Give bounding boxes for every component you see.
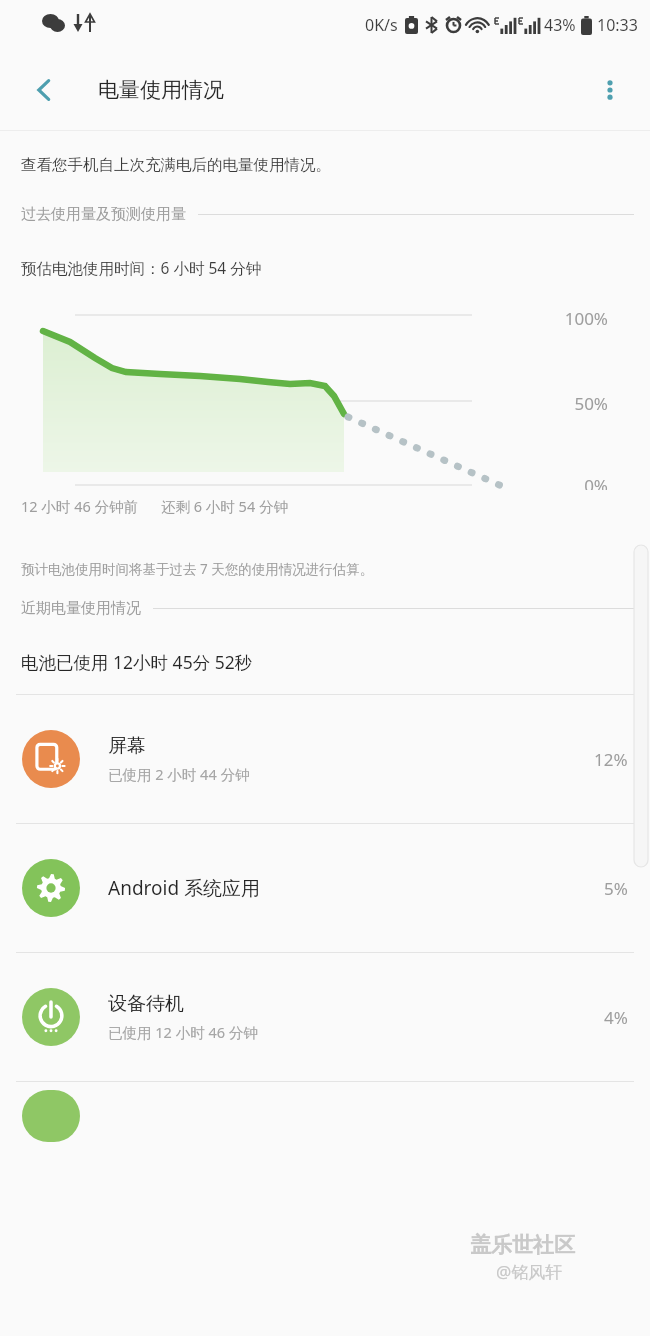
staticText: 已使用 12 小时 46 分钟 — [108, 1022, 258, 1042]
staticText: 预估电池使用时间：6 小时 54 分钟 — [21, 257, 262, 278]
button[interactable]: Back — [20, 66, 68, 114]
staticText: 电量使用情况 — [98, 77, 224, 103]
staticText: 50% — [574, 392, 608, 415]
staticText: 查看您手机自上次充满电后的电量使用情况。 — [21, 155, 331, 175]
staticText: 0K/s — [365, 14, 398, 36]
staticText: 设备待机 — [108, 992, 184, 1016]
staticText: 10:33 — [597, 14, 638, 36]
staticText: 5% — [604, 877, 628, 900]
staticText: 12% — [594, 748, 628, 771]
staticText: 屏幕 — [108, 734, 146, 758]
staticText: 近期电量使用情况 — [21, 599, 141, 618]
staticText: 预计电池使用时间将基于过去 7 天您的使用情况进行估算。 — [21, 560, 374, 578]
staticText: 100% — [564, 307, 608, 330]
staticText: 0% — [584, 474, 608, 490]
button[interactable]: 设备待机 — [0, 953, 650, 1081]
staticText: 4% — [604, 1006, 628, 1029]
button[interactable]: Android 系统应用 — [0, 824, 650, 952]
staticText: 电池已使用 12小时 45分 52秒 — [21, 650, 253, 674]
button[interactable] — [0, 1082, 650, 1142]
staticText: 12 小时 46 分钟前 — [21, 496, 138, 516]
staticText: 已使用 2 小时 44 分钟 — [108, 764, 250, 784]
staticText: 盖乐世社区 — [470, 1232, 575, 1258]
button[interactable]: More options — [586, 66, 634, 114]
staticText: 还剩 6 小时 54 分钟 — [161, 496, 288, 516]
staticText: 过去使用量及预测使用量 — [21, 205, 186, 224]
button[interactable]: 屏幕 — [0, 695, 650, 823]
staticText: 43% — [544, 14, 576, 36]
staticText: Android 系统应用 — [108, 875, 261, 901]
staticText: @铭风轩 — [496, 1260, 563, 1283]
